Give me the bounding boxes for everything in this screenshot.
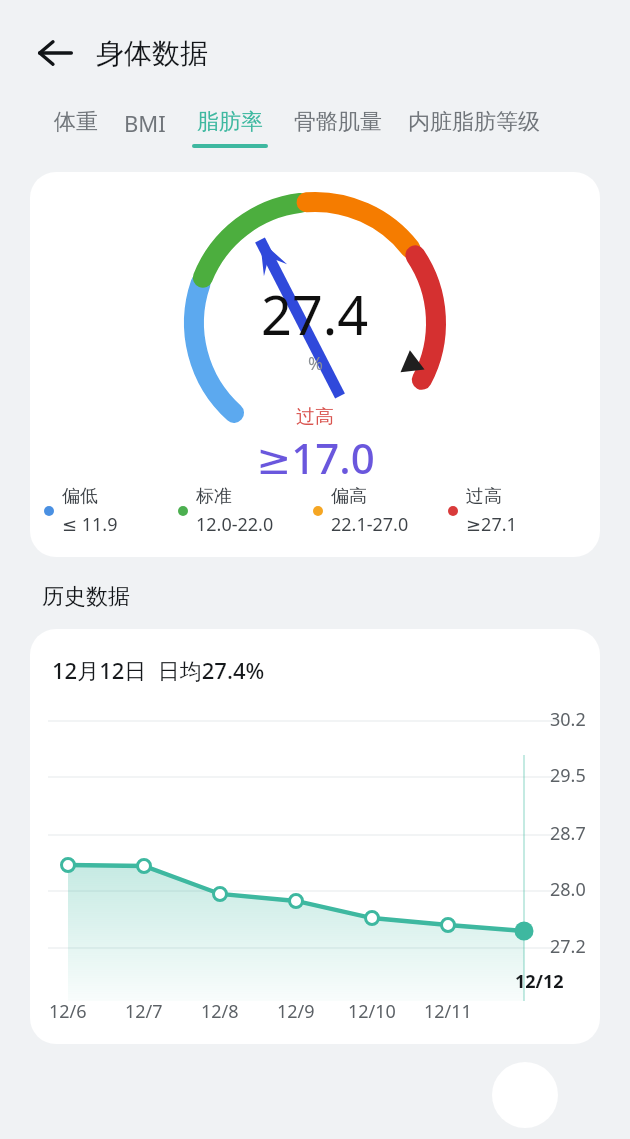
staticText: 12/11 [424, 999, 472, 1024]
staticText: 12/6 [49, 999, 87, 1024]
staticText: 内脏脂肪等级 [408, 108, 540, 136]
staticText: 脂肪率 [197, 108, 263, 136]
staticText: ≤ 11.9 [62, 512, 118, 537]
staticText: 28.0 [550, 877, 586, 902]
button[interactable]: 体重 [54, 108, 98, 144]
staticText: 历史数据 [42, 583, 130, 611]
staticText: 标准 [196, 485, 232, 508]
button[interactable]: BMI [124, 108, 166, 146]
button[interactable]: 脂肪率 [192, 108, 268, 148]
staticText: ≥27.1 [466, 512, 517, 537]
staticText: 骨骼肌量 [294, 108, 382, 136]
staticText: 偏低 [62, 485, 98, 508]
staticText: 27.2 [550, 934, 586, 959]
staticText: 12/12 [515, 969, 564, 994]
staticText: 偏高 [331, 485, 367, 508]
staticText: 12/8 [201, 999, 239, 1024]
staticText: 28.7 [550, 821, 586, 846]
staticText: 过高 [466, 485, 502, 508]
button[interactable]: 27.4 [30, 172, 600, 557]
staticText: 29.5 [550, 763, 586, 788]
staticText: 12.0-22.0 [196, 512, 274, 537]
button[interactable]: 内脏脂肪等级 [408, 108, 540, 144]
staticText: 30.2 [550, 707, 586, 732]
staticText: 体重 [54, 108, 98, 136]
button[interactable]: 12月12日 日均27.4% [30, 629, 600, 1044]
staticText: 12/9 [277, 999, 315, 1024]
staticText: ≥17.0 [256, 429, 375, 486]
staticText: 过高 [296, 405, 334, 429]
staticText: BMI [124, 108, 166, 138]
button[interactable]: Back [28, 26, 82, 80]
button[interactable]: 骨骼肌量 [294, 108, 382, 144]
staticText: 12/7 [125, 999, 163, 1024]
button[interactable]: Add measurement [492, 1062, 558, 1128]
staticText: 12月12日 日均27.4% [52, 655, 265, 685]
staticText: 22.1-27.0 [331, 512, 409, 537]
staticText: % [308, 351, 323, 376]
staticText: 12/10 [348, 999, 396, 1024]
staticText: 27.4 [261, 277, 369, 351]
staticText: 身体数据 [96, 36, 208, 71]
